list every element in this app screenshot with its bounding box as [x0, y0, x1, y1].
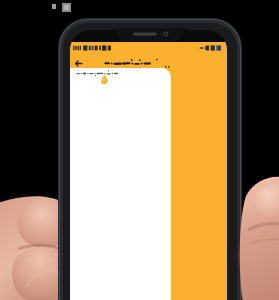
button[interactable]: Phone mockup held in hand showing app sc… — [0, 0, 279, 300]
